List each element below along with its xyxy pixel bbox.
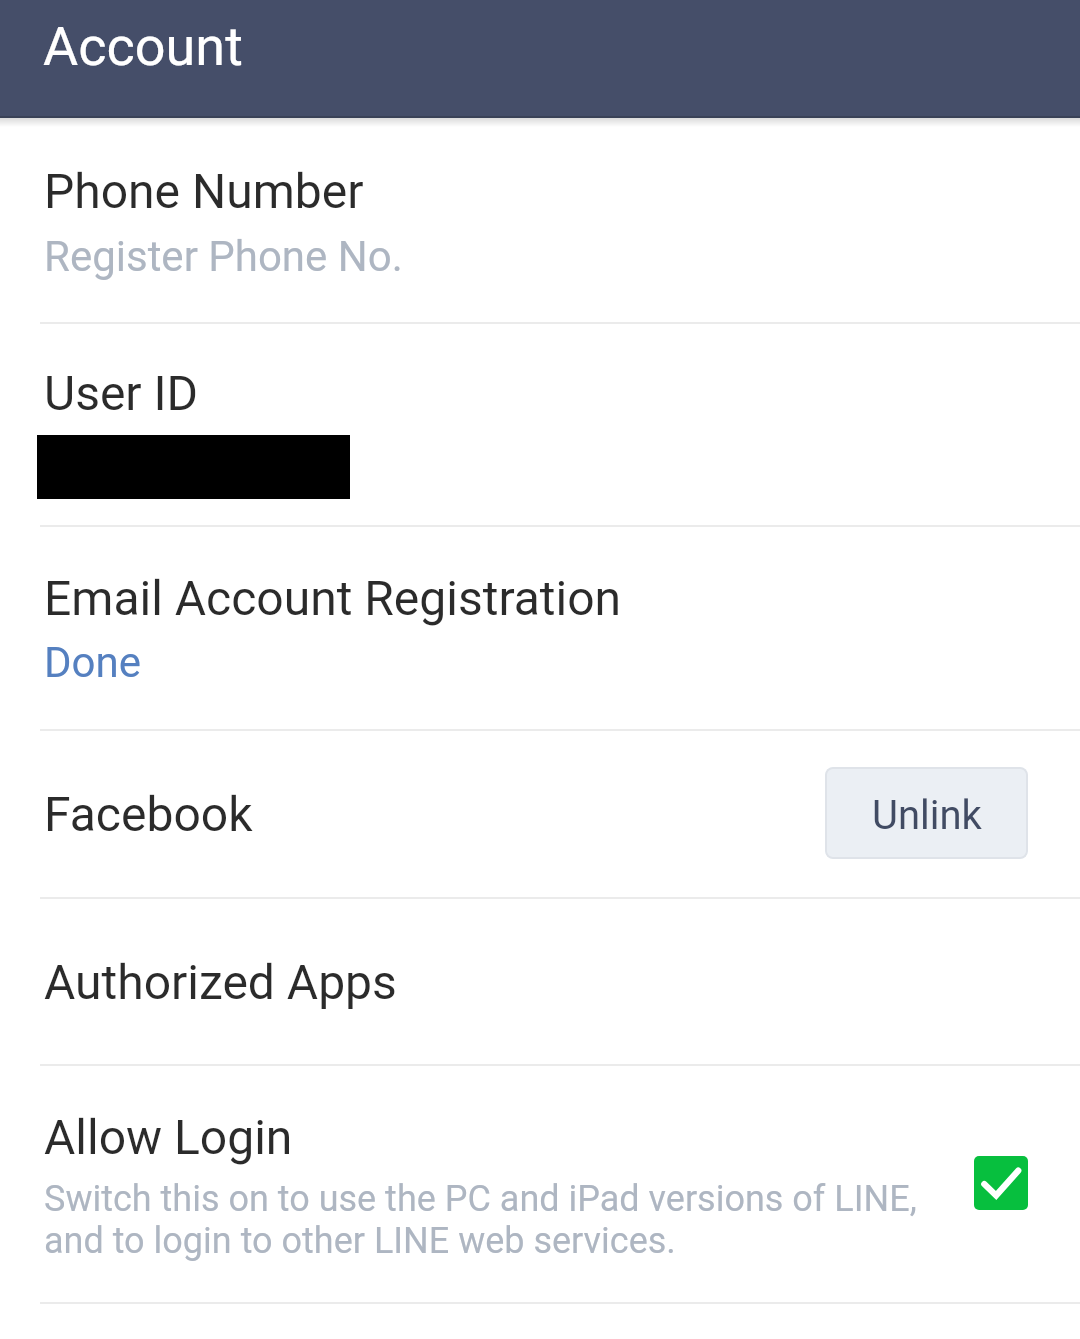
staticText: Phone Number: [44, 163, 364, 219]
button[interactable]: Allow Login, checked: [974, 1156, 1028, 1210]
staticText: Done: [44, 638, 141, 687]
button[interactable]: User ID: [0, 324, 1080, 525]
button[interactable]: Facebook: [0, 731, 1080, 897]
staticText: Allow Login: [44, 1109, 293, 1165]
staticText: Switch this on to use the PC and iPad ve…: [44, 1178, 984, 1262]
button[interactable]: Allow Login: [0, 1066, 1080, 1302]
button[interactable]: Unlink: [825, 767, 1028, 859]
staticText: User ID: [44, 365, 199, 421]
staticText: Authorized Apps: [44, 954, 397, 1010]
button[interactable]: Email Account Registration: [0, 527, 1080, 729]
button[interactable]: Authorized Apps: [0, 899, 1080, 1064]
button[interactable]: Phone Number: [0, 118, 1080, 322]
staticText: Register Phone No.: [44, 232, 403, 281]
staticText: Facebook: [44, 786, 253, 842]
staticText: Email Account Registration: [44, 570, 622, 626]
staticText: Account: [43, 15, 243, 78]
staticText: Unlink: [872, 792, 982, 839]
